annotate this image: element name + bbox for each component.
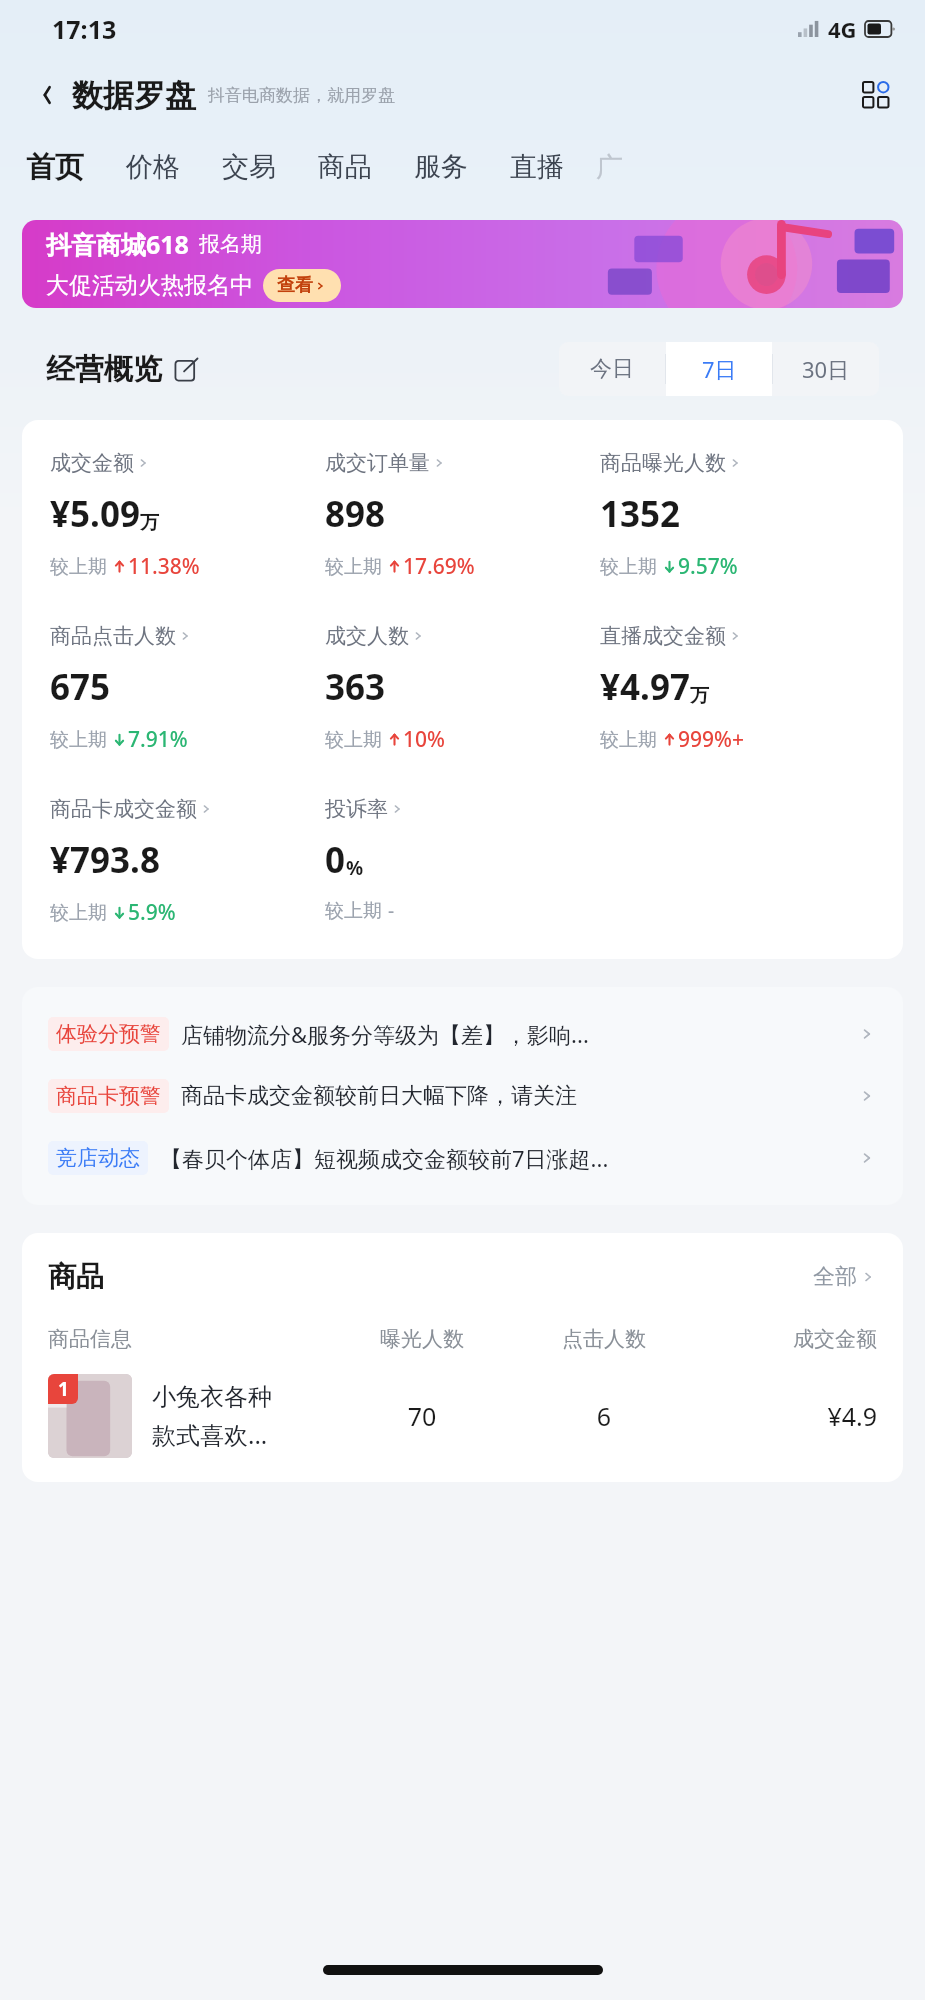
- button[interactable]: Back: [26, 74, 68, 116]
- staticText: 体验分预警: [56, 1021, 161, 1047]
- staticText: 小兔衣各种: [152, 1382, 272, 1412]
- button[interactable]: 价格: [126, 150, 180, 184]
- button[interactable]: 体验分预警: [48, 1003, 877, 1065]
- button[interactable]: 7日: [666, 342, 772, 396]
- staticText: 成交金额: [50, 450, 134, 476]
- staticText: 万: [140, 511, 159, 535]
- staticText: ¥5.09: [50, 490, 140, 538]
- button[interactable]: Apps: [853, 72, 899, 118]
- staticText: 商品卡成交金额较前日大幅下降，请关注: [181, 1082, 851, 1110]
- staticText: 17:13: [52, 12, 117, 46]
- staticText: 商品曝光人数: [600, 450, 726, 476]
- button[interactable]: 商品: [318, 150, 372, 184]
- staticText: 大促活动火热报名中: [46, 271, 253, 300]
- staticText: 查看: [277, 274, 313, 297]
- staticText: 较上期: [50, 901, 107, 925]
- button[interactable]: 服务: [414, 150, 468, 184]
- staticText: 6: [513, 1399, 695, 1433]
- staticText: 商品信息: [48, 1326, 331, 1352]
- staticText: 较上期: [325, 555, 382, 579]
- button[interactable]: 投诉率: [325, 796, 600, 924]
- button[interactable]: 全部: [813, 1263, 877, 1291]
- button[interactable]: 商品卡成交金额: [50, 796, 325, 927]
- staticText: 4G: [828, 14, 857, 44]
- staticText: 11.38%: [128, 552, 200, 581]
- button[interactable]: 竞店动态: [48, 1127, 877, 1189]
- staticText: 363: [325, 663, 386, 711]
- staticText: 1352: [600, 490, 681, 538]
- staticText: 万: [690, 684, 709, 708]
- staticText: 成交人数: [325, 623, 409, 649]
- staticText: 较上期: [600, 555, 657, 579]
- staticText: 广: [596, 150, 623, 184]
- button[interactable]: 交易: [222, 150, 276, 184]
- button[interactable]: 商品点击人数: [50, 623, 325, 754]
- staticText: 10%: [403, 725, 445, 754]
- staticText: 曝光人数: [331, 1326, 513, 1352]
- staticText: 抖音商城618: [46, 227, 189, 261]
- staticText: ¥793.8: [50, 836, 160, 884]
- button[interactable]: 直播: [510, 150, 564, 184]
- staticText: %: [346, 855, 364, 881]
- staticText: 898: [325, 490, 386, 538]
- staticText: 5.9%: [128, 898, 176, 927]
- staticText: 今日: [590, 355, 634, 383]
- button[interactable]: 经营概览: [46, 351, 198, 388]
- staticText: 0: [325, 836, 346, 884]
- staticText: 9.57%: [678, 552, 738, 581]
- button[interactable]: 今日: [559, 342, 665, 396]
- staticText: 点击人数: [513, 1326, 695, 1352]
- button[interactable]: 抖音商城618: [22, 220, 903, 308]
- staticText: ¥4.97: [600, 663, 690, 711]
- staticText: 17.69%: [403, 552, 475, 581]
- staticText: 999%+: [678, 725, 744, 754]
- staticText: 数据罗盘: [72, 76, 196, 115]
- staticText: 成交订单量: [325, 450, 430, 476]
- staticText: 7.91%: [128, 725, 188, 754]
- staticText: 成交金额: [695, 1326, 877, 1352]
- staticText: 较上期: [50, 728, 107, 752]
- staticText: 较上期: [325, 728, 382, 752]
- button[interactable]: 成交人数: [325, 623, 600, 754]
- staticText: 直播成交金额: [600, 623, 726, 649]
- staticText: 投诉率: [325, 796, 388, 822]
- staticText: 较上期: [50, 555, 107, 579]
- button[interactable]: 30日: [773, 342, 879, 396]
- staticText: 商品卡成交金额: [50, 796, 197, 822]
- staticText: 较上期: [600, 728, 657, 752]
- staticText: 1: [58, 1376, 69, 1402]
- staticText: 675: [50, 663, 111, 711]
- button[interactable]: 首页: [26, 149, 84, 186]
- staticText: 竞店动态: [56, 1145, 140, 1171]
- staticText: 商品卡预警: [56, 1083, 161, 1109]
- staticText: 30日: [802, 354, 850, 384]
- staticText: 报名期: [199, 231, 262, 257]
- button[interactable]: 成交金额: [50, 450, 325, 581]
- staticText: ¥4.9: [695, 1399, 877, 1433]
- staticText: 款式喜欢...: [152, 1418, 268, 1451]
- staticText: 店铺物流分&服务分等级为【差】，影响...: [181, 1019, 851, 1049]
- staticText: 【春贝个体店】短视频成交金额较前7日涨超...: [160, 1143, 851, 1173]
- button[interactable]: 商品卡预警: [48, 1065, 877, 1127]
- staticText: 抖音电商数据，就用罗盘: [208, 85, 395, 106]
- staticText: 商品点击人数: [50, 623, 176, 649]
- staticText: -: [388, 898, 395, 924]
- button[interactable]: 成交订单量: [325, 450, 600, 581]
- staticText: 70: [331, 1399, 513, 1433]
- staticText: 较上期: [325, 899, 382, 923]
- staticText: 商品: [48, 1259, 104, 1294]
- staticText: 经营概览: [46, 351, 162, 388]
- button[interactable]: 商品曝光人数: [600, 450, 875, 581]
- button[interactable]: 查看: [277, 274, 327, 297]
- button[interactable]: 1: [48, 1374, 877, 1458]
- button[interactable]: 直播成交金额: [600, 623, 875, 754]
- staticText: 7日: [702, 354, 737, 384]
- staticText: 全部: [813, 1263, 857, 1291]
